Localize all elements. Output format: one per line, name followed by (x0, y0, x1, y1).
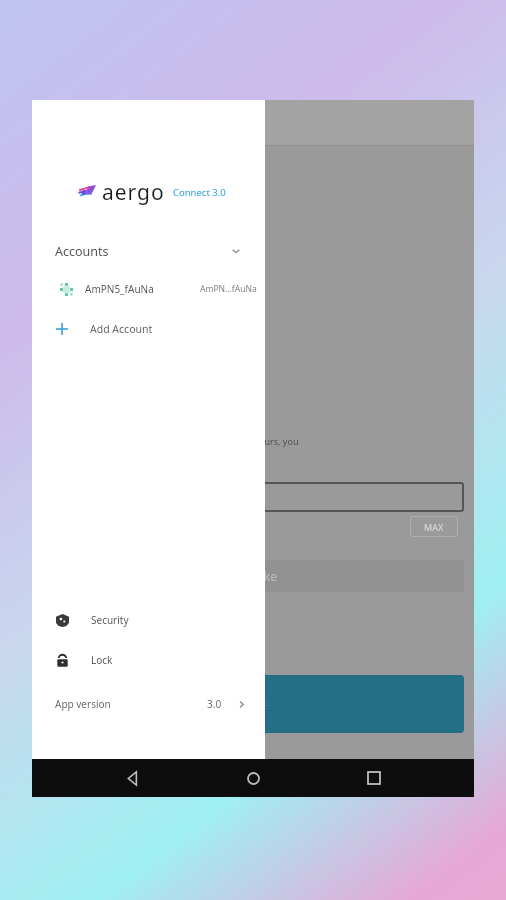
staticText: UnStake (230, 568, 278, 584)
button[interactable]: UnStake (44, 560, 464, 592)
staticText: You can not change your staking balance … (38, 435, 299, 447)
button[interactable]: Stake (44, 675, 464, 733)
button[interactable]: Back (113, 759, 153, 797)
staticText: Stake (237, 695, 271, 713)
staticText: Accounts (55, 243, 109, 260)
staticText: Connect 3.0 (173, 186, 226, 199)
button[interactable]: AmPN5_fAuNa (32, 275, 265, 303)
button[interactable]: App version (32, 691, 265, 717)
button[interactable]: Home (233, 759, 273, 797)
staticText: 3.0 (207, 697, 222, 711)
staticText: Add Account (90, 322, 153, 336)
staticText: Stake: 0 aergo (48, 318, 109, 330)
staticText: Lock (91, 653, 113, 667)
button[interactable]: Accounts (32, 235, 265, 267)
staticText: AmPN5_fAuNa (85, 282, 154, 296)
staticText: App version (55, 697, 111, 711)
staticText: Security (91, 613, 129, 627)
staticText: aergo (102, 178, 165, 207)
button[interactable]: Lock (32, 645, 265, 675)
button[interactable]: MAX (410, 516, 458, 537)
button[interactable] (44, 482, 464, 512)
staticText: MAX (424, 521, 444, 533)
button[interactable]: Security (32, 605, 265, 635)
button[interactable]: Add Account (32, 315, 265, 343)
staticText: AmPN...fAuNa (200, 283, 257, 295)
button[interactable]: Recents (354, 759, 394, 797)
